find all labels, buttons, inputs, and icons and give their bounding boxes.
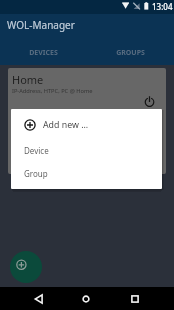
staticText: Home xyxy=(12,72,44,87)
button[interactable]: Home xyxy=(72,287,100,310)
button[interactable]: Add new ... xyxy=(11,109,162,141)
button[interactable]: Home xyxy=(8,68,166,174)
button[interactable]: DEVICES xyxy=(0,40,87,65)
button[interactable]: Device xyxy=(11,141,162,160)
staticText: IP-Address, HTPC, PC @ Home xyxy=(12,87,93,95)
button[interactable]: Group xyxy=(11,160,162,186)
staticText: GROUPS xyxy=(116,48,145,58)
button[interactable]: Recent apps xyxy=(121,287,149,310)
button[interactable]: Back xyxy=(24,287,52,310)
staticText: Add new ... xyxy=(43,119,89,131)
button[interactable]: Power xyxy=(141,93,157,109)
staticText: DEVICES xyxy=(29,48,58,58)
staticText: WOL-Manager xyxy=(7,18,75,32)
button[interactable]: GROUPS xyxy=(87,40,174,65)
staticText: Group xyxy=(24,168,48,179)
staticText: 13:04 xyxy=(152,1,173,12)
button[interactable]: Add xyxy=(10,251,42,283)
staticText: Device xyxy=(24,145,49,156)
